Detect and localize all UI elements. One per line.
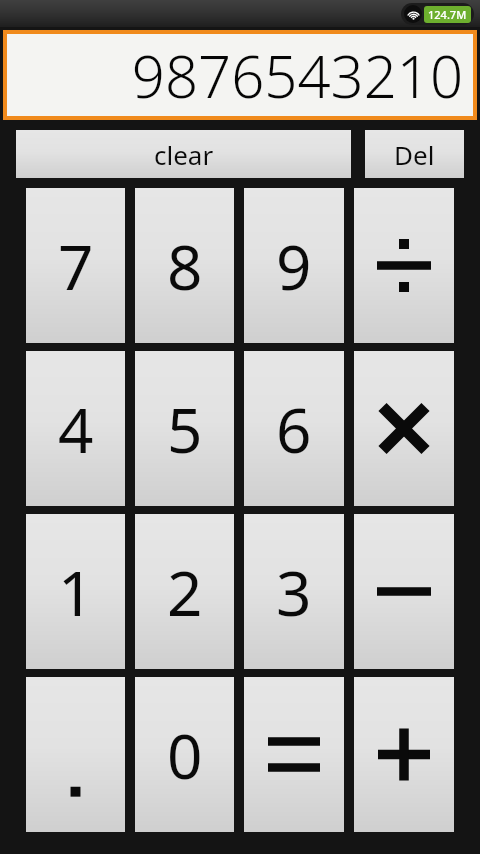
button[interactable]: 6 bbox=[244, 351, 344, 506]
button[interactable]: 7 bbox=[26, 188, 125, 343]
button[interactable]: Equals bbox=[244, 677, 344, 832]
staticText: 4 bbox=[58, 387, 94, 471]
staticText: 9876543210 bbox=[131, 36, 463, 115]
button[interactable]: 2 bbox=[135, 514, 234, 669]
staticText: Del bbox=[394, 137, 435, 172]
button[interactable]: 1 bbox=[26, 514, 125, 669]
button[interactable]: Divide bbox=[354, 188, 454, 343]
staticText: 1 bbox=[58, 550, 94, 634]
button[interactable]: 0 bbox=[135, 677, 234, 832]
button[interactable]: 5 bbox=[135, 351, 234, 506]
button[interactable]: Multiply bbox=[354, 351, 454, 506]
button[interactable]: 4 bbox=[26, 351, 125, 506]
button[interactable]: 9 bbox=[244, 188, 344, 343]
staticText: 2 bbox=[167, 550, 203, 634]
staticText: 124.7M bbox=[428, 7, 467, 22]
staticText: 8 bbox=[167, 224, 203, 308]
staticText: 3 bbox=[276, 550, 312, 634]
button[interactable]: Del bbox=[365, 130, 464, 178]
button[interactable]: 8 bbox=[135, 188, 234, 343]
button[interactable]: Subtract bbox=[354, 514, 454, 669]
staticText: 6 bbox=[276, 387, 312, 471]
staticText: 7 bbox=[58, 224, 94, 308]
button[interactable]: clear bbox=[16, 130, 351, 178]
staticText: 0 bbox=[167, 713, 203, 797]
button[interactable]: Add bbox=[354, 677, 454, 832]
staticText: clear bbox=[154, 137, 214, 172]
button[interactable]: 3 bbox=[244, 514, 344, 669]
staticText: 9 bbox=[276, 224, 312, 308]
staticText: 5 bbox=[167, 387, 203, 471]
button[interactable]: Decimal point bbox=[26, 677, 125, 832]
